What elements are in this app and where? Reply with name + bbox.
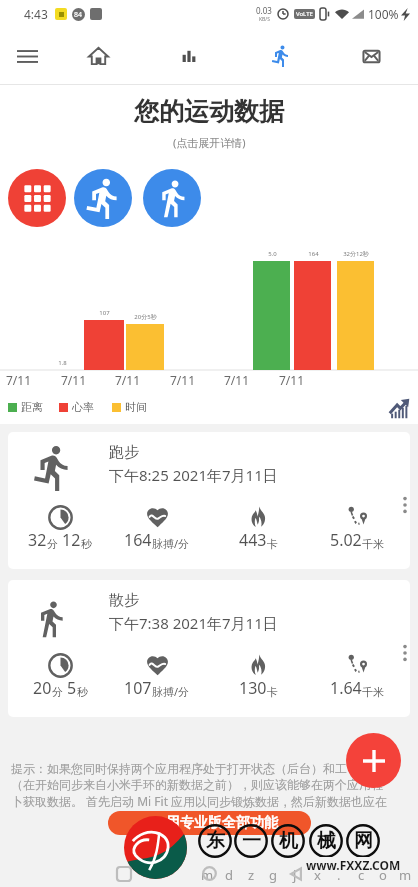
- staticText: 分: [52, 685, 63, 699]
- staticText: 心率: [72, 400, 94, 414]
- staticText: 机: [279, 829, 298, 853]
- staticText: 卜获取数据。 首先启动 Mi Fit 应用以同步锻炼数据，然后新数据也应在: [11, 793, 388, 809]
- button[interactable]: Trends: [385, 396, 411, 422]
- staticText: 提示：如果您同时保持两个应用程序处于打开状态（后台）和工: [11, 761, 347, 776]
- button[interactable]: Messages: [348, 28, 394, 84]
- staticText: 用专业版全部功能: [166, 814, 278, 832]
- staticText: 脉搏/分: [152, 536, 190, 551]
- staticText: 脉搏/分: [152, 684, 190, 699]
- staticText: 32: [28, 529, 47, 551]
- staticText: 分: [47, 537, 58, 551]
- staticText: 0.03: [256, 5, 272, 16]
- staticText: 100%: [368, 6, 399, 22]
- button[interactable]: Menu: [4, 28, 50, 84]
- staticText: 7/11: [61, 372, 87, 388]
- staticText: 164: [124, 529, 152, 551]
- button[interactable]: Recents: [108, 860, 140, 887]
- button[interactable]: More options: [394, 494, 410, 516]
- staticText: 卡: [267, 685, 278, 699]
- staticText: 械: [317, 829, 336, 853]
- staticText: 20: [33, 677, 52, 699]
- staticText: 84: [74, 10, 83, 20]
- staticText: 107: [99, 309, 110, 317]
- staticText: 秒: [77, 685, 88, 699]
- staticText: c: [358, 866, 365, 884]
- staticText: m: [399, 866, 412, 884]
- staticText: 时间: [125, 400, 147, 414]
- staticText: 千米: [362, 685, 384, 699]
- staticText: 秒: [81, 537, 92, 551]
- staticText: x: [314, 866, 321, 884]
- staticText: 443: [239, 529, 267, 551]
- staticText: m: [201, 866, 214, 884]
- button[interactable]: Add activity: [346, 733, 401, 788]
- staticText: 107: [124, 677, 152, 699]
- staticText: 东: [206, 829, 225, 853]
- staticText: 130: [239, 677, 267, 699]
- staticText: 5: [67, 677, 77, 699]
- staticText: 千米: [362, 537, 384, 551]
- staticText: 1.64: [330, 677, 362, 699]
- button[interactable]: Walking: [143, 169, 201, 227]
- staticText: 12: [62, 529, 81, 551]
- staticText: 7/11: [115, 372, 141, 388]
- button[interactable]: Running: [74, 169, 132, 227]
- staticText: 下午8:25 2021年7月11日: [109, 465, 278, 485]
- staticText: 32分12秒: [343, 250, 369, 258]
- staticText: 您的运动数据: [134, 96, 284, 127]
- staticText: VoLTE: [296, 10, 313, 18]
- staticText: 7/11: [224, 372, 250, 388]
- staticText: （在开始同步来自小米手环的新数据之前），则应该能够在两个应用程: [11, 777, 383, 792]
- button[interactable]: More options: [394, 642, 410, 664]
- staticText: 跑步: [109, 443, 139, 462]
- staticText: 5.0: [268, 250, 277, 258]
- staticText: 下午7:38 2021年7月11日: [109, 613, 278, 633]
- staticText: z: [248, 866, 255, 884]
- button[interactable]: Home: [75, 28, 121, 84]
- staticText: o: [379, 866, 387, 884]
- staticText: 1.8: [58, 359, 67, 367]
- staticText: 4:43: [24, 6, 48, 22]
- button[interactable]: Activity: [258, 28, 304, 84]
- staticText: 散步: [109, 591, 139, 610]
- staticText: .: [337, 866, 341, 884]
- staticText: KB/S: [259, 16, 270, 23]
- staticText: 7/11: [170, 372, 196, 388]
- staticText: 5.02: [330, 529, 362, 551]
- button[interactable]: Back: [280, 860, 312, 887]
- staticText: 网: [354, 829, 373, 853]
- button[interactable]: Home: [193, 860, 225, 887]
- staticText: 7/11: [6, 372, 32, 388]
- staticText: www.FXXZ.COM: [306, 857, 401, 873]
- button[interactable]: Statistics: [166, 28, 212, 84]
- staticText: d: [225, 866, 233, 884]
- staticText: 20分5秒: [134, 313, 157, 321]
- staticText: 7/11: [279, 372, 305, 388]
- staticText: 一: [242, 829, 261, 853]
- button[interactable]: 跑步: [8, 432, 410, 569]
- staticText: 164: [308, 250, 319, 258]
- staticText: (点击展开详情): [173, 135, 246, 150]
- staticText: 卡: [267, 537, 278, 551]
- staticText: j: [293, 866, 297, 884]
- staticText: 距离: [21, 400, 43, 414]
- button[interactable]: All activities: [8, 169, 66, 227]
- button[interactable]: 散步: [8, 580, 410, 717]
- staticText: g: [269, 866, 277, 884]
